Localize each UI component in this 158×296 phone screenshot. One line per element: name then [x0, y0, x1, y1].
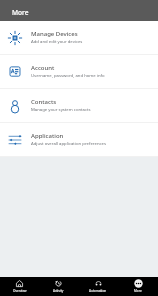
button[interactable]: Application	[0, 123, 158, 156]
staticText: Add and edit your devices	[31, 38, 83, 44]
other: Automation	[95, 280, 102, 287]
staticText: Adjust overall application preferences	[31, 140, 106, 146]
staticText: Application	[31, 132, 64, 140]
staticText: Automation	[89, 289, 107, 293]
staticText: Overview	[13, 289, 27, 293]
button[interactable]: Automation	[78, 277, 118, 296]
button[interactable]: Contacts	[0, 89, 158, 122]
button[interactable]: Overview	[0, 277, 39, 296]
staticText: More	[134, 289, 142, 293]
button[interactable]: Account	[0, 55, 158, 88]
other: Overview	[16, 280, 23, 287]
other: More	[135, 280, 142, 287]
other: Activity	[55, 280, 62, 287]
staticText: Manage your system contacts	[31, 106, 91, 112]
staticText: More	[12, 8, 29, 17]
staticText: Manage Devices	[31, 30, 78, 38]
button[interactable]: More	[118, 277, 158, 296]
staticText: Contacts	[31, 98, 57, 106]
staticText: Activity	[53, 289, 64, 293]
staticText: Username, password, and home info	[31, 72, 105, 78]
button[interactable]: Manage Devices	[0, 21, 158, 54]
button[interactable]: Activity	[39, 277, 78, 296]
staticText: Account	[31, 64, 55, 72]
